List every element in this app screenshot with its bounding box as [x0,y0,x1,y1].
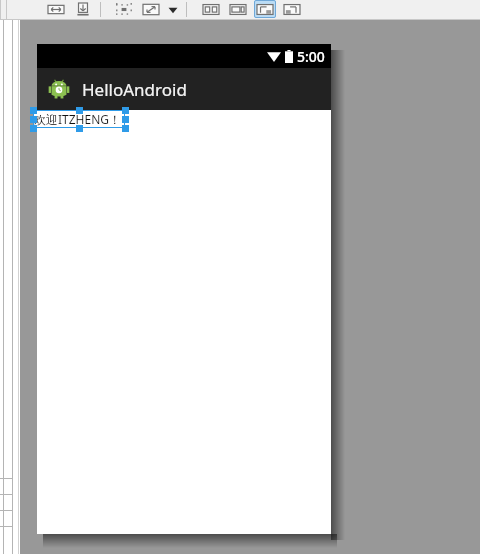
button[interactable]: More options [166,4,180,16]
button[interactable]: Wide cell [227,0,249,18]
button[interactable]: 欢迎ITZHENG！ [33,110,125,128]
button[interactable]: App icon [37,68,331,110]
button[interactable]: Show bounds [113,0,135,18]
button[interactable]: Distribute horizontally [45,0,67,18]
other: App icon [48,78,70,100]
staticText: 欢迎ITZHENG！ [34,111,122,127]
button[interactable]: Unnest layout [281,0,303,18]
staticText: 5:00 [297,47,325,66]
staticText: HelloAndroid [82,78,187,101]
button[interactable]: Expand [140,0,162,18]
button[interactable]: Nest layout [254,0,276,18]
button[interactable]: Two columns [200,0,222,18]
button[interactable]: Align bottom [72,0,94,18]
